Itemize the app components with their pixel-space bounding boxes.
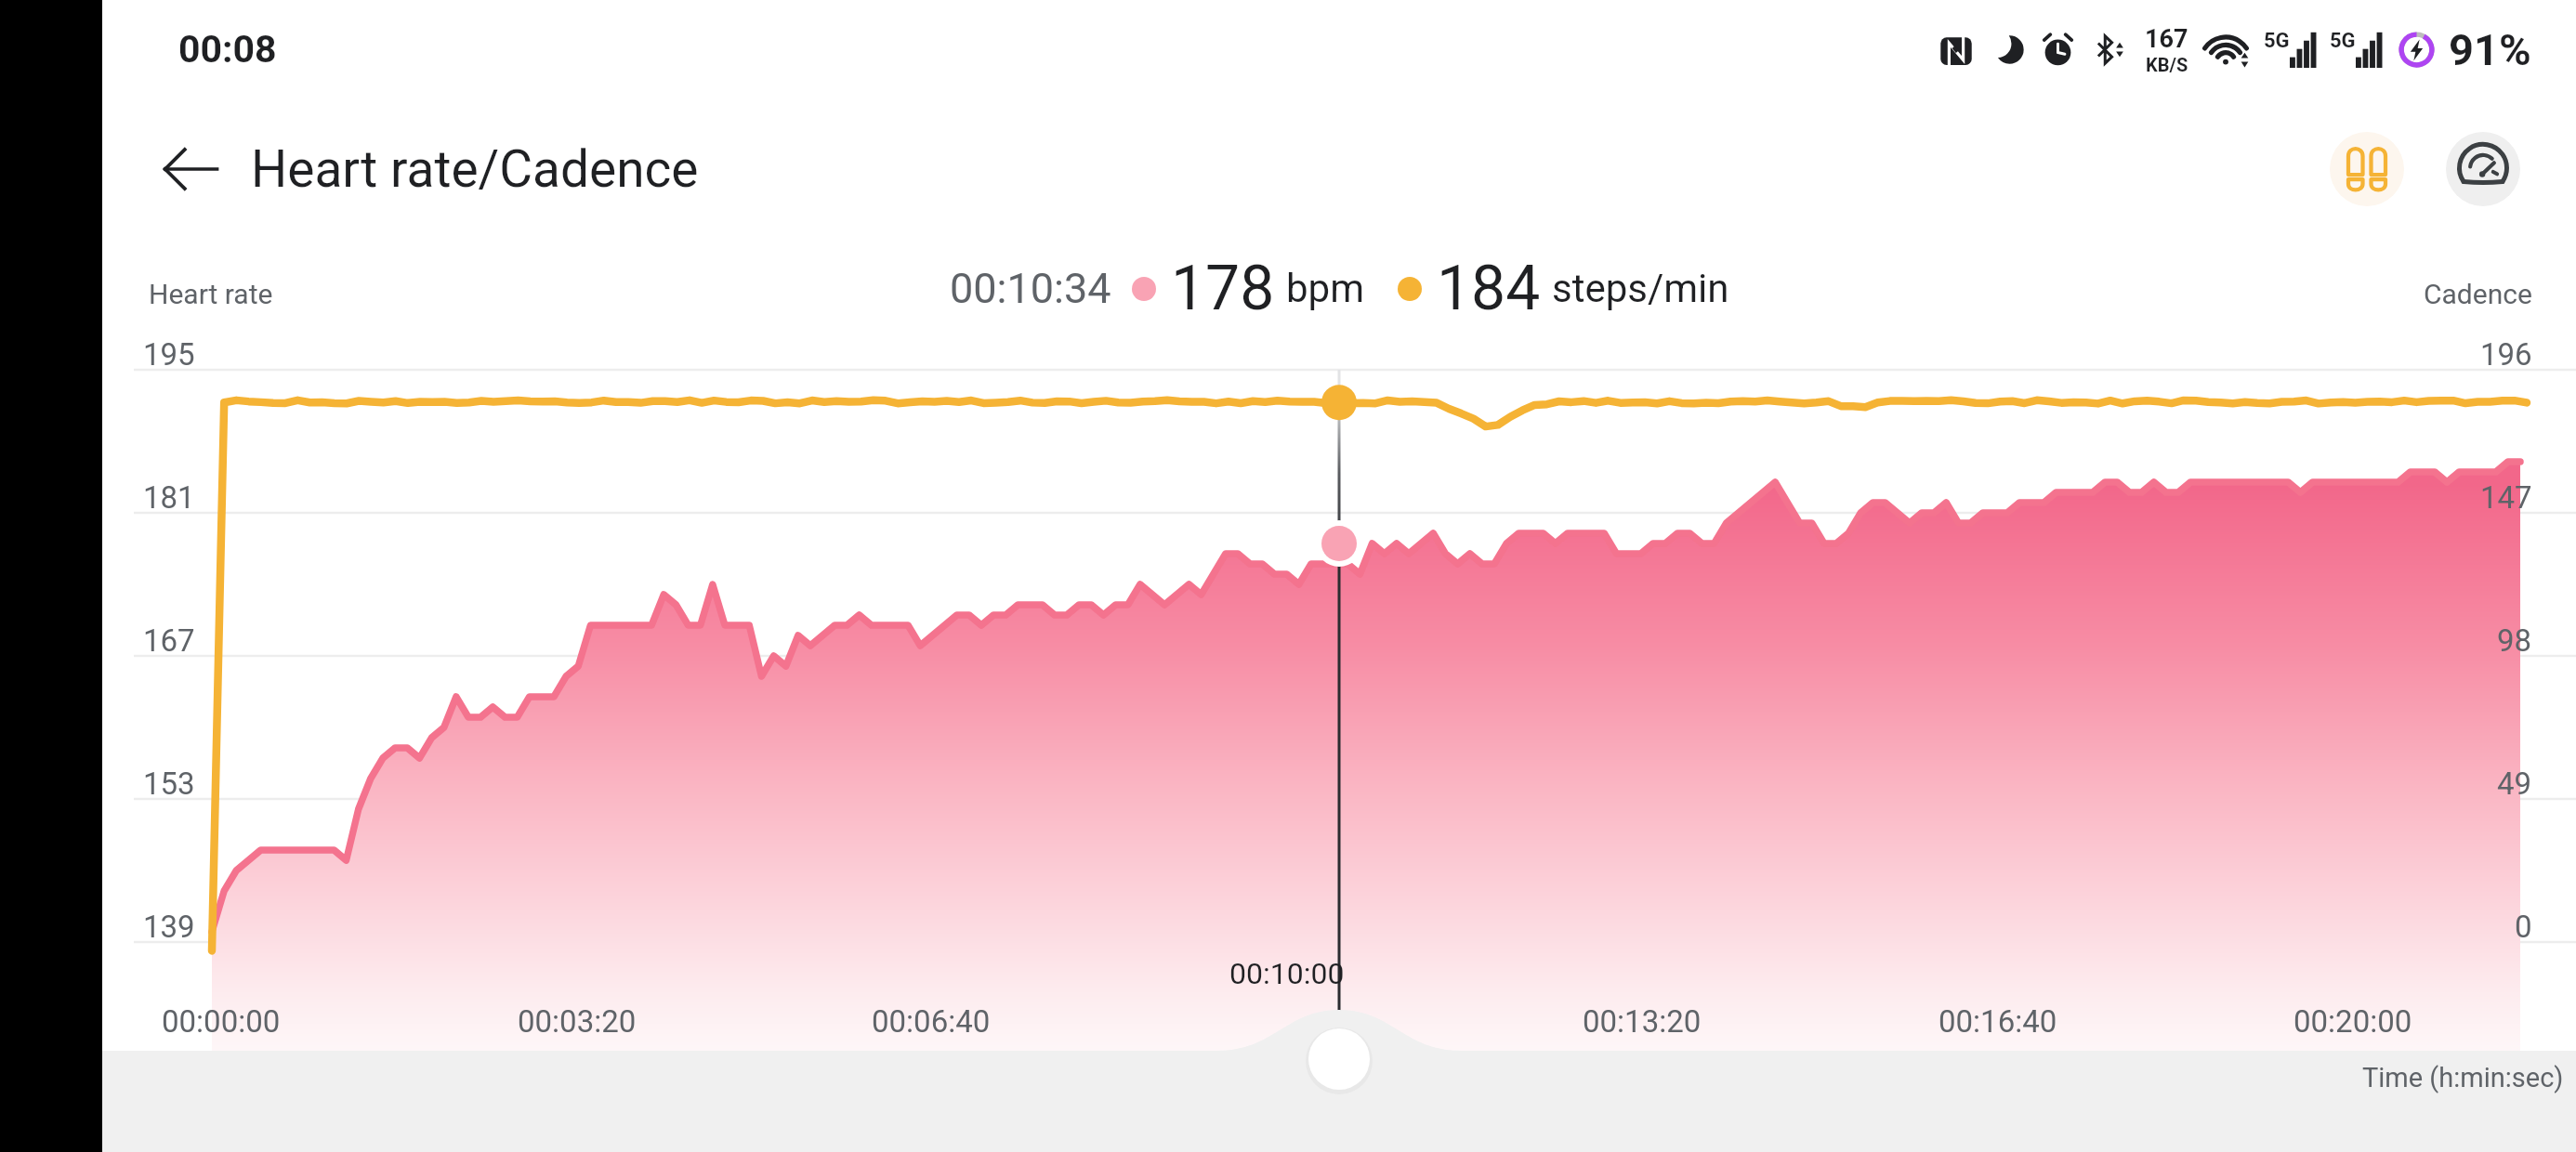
staticText: 5G: [2330, 29, 2356, 53]
staticText: 147: [2480, 479, 2532, 516]
staticText: 00:20:00: [2293, 1003, 2412, 1040]
staticText: 91%: [2449, 24, 2531, 75]
staticText: KB/S: [2146, 54, 2188, 75]
staticText: 139: [143, 909, 195, 945]
staticText: 00:13:20: [1583, 1003, 1702, 1040]
staticText: steps/min: [1552, 266, 1729, 311]
staticText: 184: [1437, 253, 1541, 324]
staticText: 196: [2480, 336, 2532, 373]
staticText: 00:06:40: [872, 1003, 991, 1040]
staticText: 181: [143, 479, 195, 516]
staticText: 00:03:20: [518, 1003, 637, 1040]
button[interactable]: Scrub timeline: [1306, 1026, 1373, 1093]
staticText: 00:10:34: [950, 264, 1111, 313]
staticText: Heart rate: [149, 278, 273, 310]
staticText: 00:16:40: [1939, 1003, 2057, 1040]
staticText: bpm: [1286, 266, 1364, 311]
button[interactable]: Speed: [2446, 132, 2520, 206]
staticText: 0: [2515, 909, 2532, 945]
staticText: Time (h:min:sec): [2362, 1062, 2564, 1093]
staticText: Heart rate/Cadence: [251, 139, 699, 199]
staticText: 00:00:00: [162, 1003, 281, 1040]
staticText: 195: [143, 336, 195, 373]
button[interactable]: Cadence: [2330, 132, 2404, 206]
staticText: 5G: [2264, 29, 2290, 53]
staticText: 178: [1171, 253, 1275, 324]
staticText: 49: [2497, 766, 2532, 802]
staticText: 00:10:00: [1229, 956, 1345, 991]
staticText: 153: [143, 766, 195, 802]
button[interactable]: Back: [151, 129, 230, 209]
staticText: 00:08: [178, 27, 277, 72]
staticText: 167: [2145, 24, 2188, 54]
staticText: Cadence: [2424, 278, 2532, 310]
staticText: 167: [143, 622, 195, 659]
staticText: 98: [2497, 622, 2532, 659]
